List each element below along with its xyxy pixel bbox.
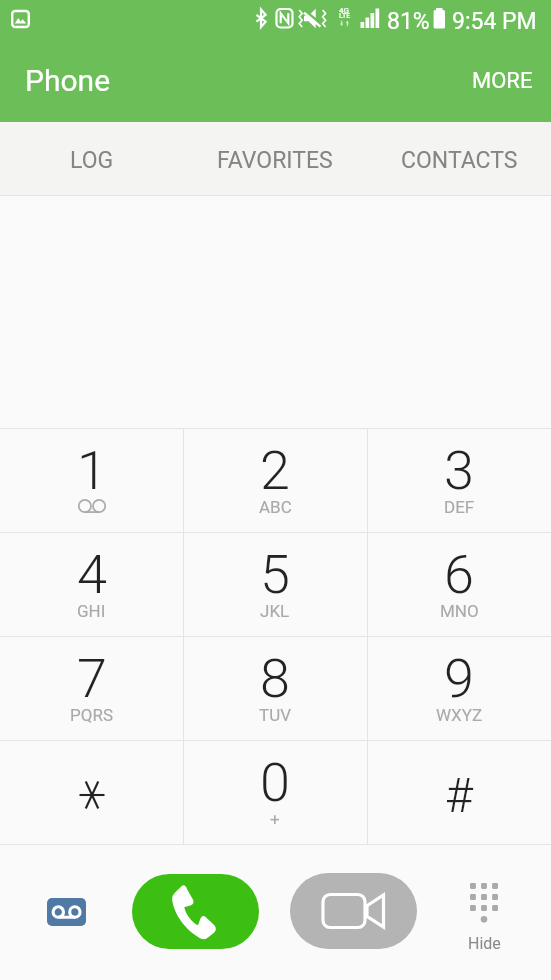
staticText: 9:54 PM (452, 8, 537, 35)
staticText: + (270, 809, 280, 829)
staticText: 4G (339, 6, 349, 15)
staticText: LOG (70, 147, 114, 174)
button[interactable]: 8 (183, 637, 367, 740)
staticText: WXYZ (436, 705, 483, 725)
button[interactable]: 5 (183, 533, 367, 636)
staticText: TUV (259, 705, 291, 725)
staticText: PQRS (70, 705, 113, 725)
button[interactable]: 0 (183, 741, 367, 844)
staticText: 3 (444, 439, 474, 502)
button[interactable]: Voicemail (47, 898, 86, 926)
staticText: 9 (444, 647, 474, 710)
staticText: GHI (77, 601, 106, 621)
button[interactable]: FAVORITES (183, 122, 367, 195)
button[interactable]: MORE (454, 58, 551, 104)
staticText: Hide (468, 934, 501, 953)
staticText: 1 (77, 439, 107, 502)
staticText: 81% (387, 8, 430, 35)
staticText: 4 (77, 543, 107, 606)
staticText: 8 (260, 647, 290, 710)
staticText: MNO (440, 601, 479, 621)
button[interactable]: LOG (0, 122, 183, 195)
button[interactable]: 2 (183, 429, 367, 532)
button[interactable] (0, 741, 183, 844)
staticText: DEF (444, 497, 475, 517)
staticText: LTE (339, 12, 351, 20)
staticText: FAVORITES (217, 147, 333, 174)
staticText: ABC (259, 497, 292, 517)
button[interactable]: CONTACTS (367, 122, 551, 195)
button[interactable]: # (367, 741, 551, 844)
button[interactable]: 9 (367, 637, 551, 740)
staticText: 7 (77, 647, 107, 710)
staticText: 5 (260, 543, 290, 606)
staticText: 0 (260, 751, 290, 814)
staticText: JKL (260, 601, 290, 621)
button[interactable]: Hide keypad (455, 875, 513, 950)
button[interactable]: Call (132, 874, 259, 949)
button[interactable]: Video call (290, 873, 417, 949)
button[interactable]: 6 (367, 533, 551, 636)
staticText: MORE (472, 68, 533, 94)
button[interactable]: 7 (0, 637, 183, 740)
staticText: # (445, 767, 473, 823)
staticText: 6 (444, 543, 474, 606)
staticText: Phone (25, 63, 111, 98)
button[interactable]: 3 (367, 429, 551, 532)
button[interactable]: 1 (0, 429, 183, 532)
staticText: CONTACTS (401, 147, 518, 174)
staticText: 2 (260, 439, 290, 502)
button[interactable]: 4 (0, 533, 183, 636)
